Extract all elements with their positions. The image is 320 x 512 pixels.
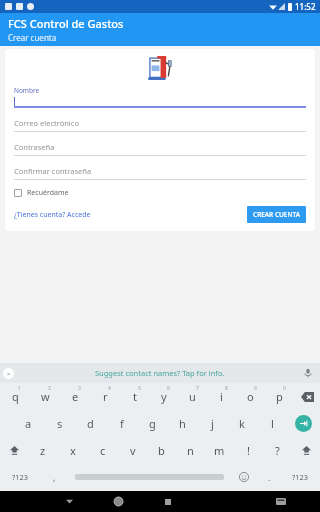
staticText: 6 (167, 385, 170, 392)
button[interactable]: ?123 (0, 464, 40, 489)
button[interactable]: ! (234, 437, 263, 464)
staticText: m (214, 443, 225, 458)
staticText: t (133, 389, 137, 404)
button[interactable]: ¿Tienes cuenta? Accede (14, 208, 91, 222)
staticText: i (220, 389, 223, 404)
button[interactable]: ?123 (280, 464, 320, 489)
button[interactable]: a (13, 410, 44, 437)
button[interactable]: Backspace (294, 383, 320, 410)
staticText: > (7, 370, 11, 378)
button[interactable]: b (147, 437, 176, 464)
button[interactable]: 4 (90, 383, 120, 410)
staticText: ?123 (292, 472, 309, 482)
staticText: q (12, 389, 19, 404)
button[interactable]: v (118, 437, 147, 464)
button[interactable]: 7 (178, 383, 207, 410)
staticText: 11:52 (295, 1, 316, 12)
button[interactable]: 6 (149, 383, 178, 410)
button[interactable]: 3 (60, 383, 90, 410)
button[interactable]: c (88, 437, 118, 464)
button[interactable]: Space (68, 464, 230, 489)
staticText: 7 (196, 385, 199, 392)
button[interactable]: 0 (265, 383, 294, 410)
button[interactable]: Suggest contact names? Tap for info. (95, 368, 225, 378)
staticText: , (53, 471, 56, 483)
staticText: f (120, 416, 124, 431)
button[interactable]: 2 (30, 383, 60, 410)
button[interactable]: m (205, 437, 234, 464)
button[interactable]: Recuérdame (14, 186, 69, 200)
staticText: CREAR CUENTA (253, 210, 300, 219)
button[interactable]: j (197, 410, 227, 437)
button[interactable]: g (137, 410, 167, 437)
staticText: l (271, 416, 274, 431)
button[interactable]: CREAR CUENTA (247, 206, 306, 223)
button[interactable]: d (75, 410, 106, 437)
staticText: Recuérdame (27, 188, 69, 198)
button[interactable]: Shift (292, 437, 320, 464)
button[interactable]: Home (94, 491, 143, 512)
button[interactable]: l (257, 410, 287, 437)
staticText: Contraseña (14, 142, 55, 152)
button[interactable]: 8 (207, 383, 236, 410)
staticText: FCS Control de Gastos (8, 16, 124, 31)
staticText: Correo electrónico (14, 118, 79, 128)
button[interactable]: ? (263, 437, 292, 464)
staticText: ! (247, 443, 250, 458)
staticText: Nombre (14, 86, 40, 95)
staticText: 5 (138, 385, 141, 392)
staticText: j (211, 416, 214, 431)
button[interactable]: Voice input (302, 367, 314, 379)
staticText: w (41, 389, 50, 404)
staticText: y (161, 389, 167, 404)
button[interactable]: Switch keyboard (256, 491, 305, 512)
staticText: d (87, 416, 94, 431)
staticText: o (247, 389, 254, 404)
button[interactable]: Emoji (230, 464, 258, 489)
staticText: g (149, 416, 156, 431)
staticText: ?123 (12, 472, 29, 482)
button[interactable]: h (167, 410, 197, 437)
button[interactable]: 9 (236, 383, 265, 410)
staticText: b (158, 443, 165, 458)
staticText: 8 (225, 385, 228, 392)
staticText: 0 (283, 385, 286, 392)
staticText: k (239, 416, 245, 431)
staticText: p (276, 389, 283, 404)
staticText: e (72, 389, 79, 404)
staticText: c (100, 443, 106, 458)
staticText: Crear cuenta (8, 32, 57, 43)
staticText: x (70, 443, 76, 458)
staticText: h (179, 416, 186, 431)
staticText: s (57, 416, 63, 431)
staticText: a (25, 416, 32, 431)
button[interactable]: Expand suggestions (3, 368, 14, 379)
staticText: . (268, 471, 271, 483)
staticText: ? (275, 443, 280, 458)
staticText: 9 (254, 385, 257, 392)
staticText: r (103, 389, 108, 404)
staticText: 3 (78, 385, 81, 392)
button[interactable]: Back (45, 491, 94, 512)
button[interactable]: Shift (0, 437, 28, 464)
staticText: 2 (48, 385, 51, 392)
staticText: 1 (18, 385, 21, 392)
button[interactable]: , (40, 464, 68, 489)
staticText: n (187, 443, 194, 458)
button[interactable]: . (258, 464, 280, 489)
button[interactable]: f (106, 410, 137, 437)
staticText: Confirmar contraseña (14, 166, 92, 176)
button[interactable]: k (227, 410, 257, 437)
staticText: u (189, 389, 196, 404)
button[interactable]: 5 (120, 383, 149, 410)
button[interactable]: 1 (0, 383, 30, 410)
button[interactable]: Recents (143, 491, 192, 512)
button[interactable]: x (58, 437, 88, 464)
staticText: z (40, 443, 46, 458)
staticText: v (130, 443, 136, 458)
button[interactable]: Next (287, 410, 320, 437)
button[interactable]: z (28, 437, 58, 464)
staticText: 4 (108, 385, 111, 392)
button[interactable]: n (176, 437, 205, 464)
button[interactable]: s (44, 410, 75, 437)
